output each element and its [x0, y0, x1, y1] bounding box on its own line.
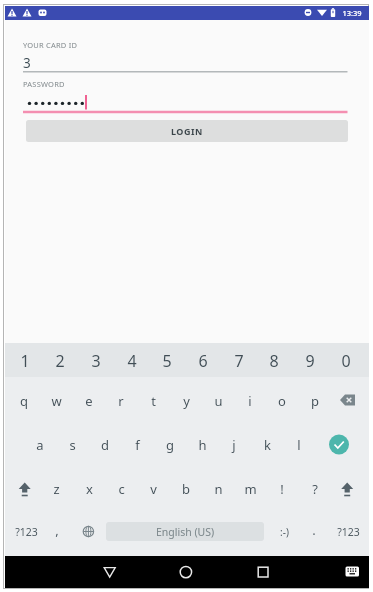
staticText: YOUR CARD ID	[23, 40, 78, 50]
staticText: LOGIN	[171, 125, 203, 137]
staticText: z	[53, 480, 60, 498]
staticText: 9	[305, 350, 315, 372]
staticText: q	[20, 392, 28, 410]
staticText: 3	[23, 54, 31, 72]
staticText: 5	[162, 350, 172, 372]
staticText: e	[85, 392, 93, 410]
staticText: o	[278, 392, 286, 410]
staticText: ?	[312, 480, 318, 498]
staticText: a	[36, 436, 44, 454]
staticText: 3	[91, 350, 101, 372]
staticText: w	[51, 392, 62, 410]
staticText: 13:39	[342, 8, 362, 18]
button[interactable]: LOGIN	[26, 120, 348, 142]
staticText: :-)	[280, 525, 289, 539]
staticText: m	[244, 480, 257, 498]
staticText: b	[182, 480, 190, 498]
staticText: p	[311, 392, 319, 410]
staticText: x	[86, 480, 93, 498]
staticText: ?123	[337, 525, 360, 539]
staticText: j	[232, 436, 236, 454]
staticText: 6	[198, 350, 208, 372]
staticText: i	[248, 392, 252, 410]
staticText: r	[118, 392, 124, 410]
staticText: l	[297, 436, 301, 454]
staticText: 4	[127, 350, 137, 372]
staticText: !	[280, 480, 284, 498]
staticText: u	[214, 392, 223, 410]
staticText: n	[214, 480, 223, 498]
staticText: d	[101, 436, 109, 454]
button[interactable]: English (US)	[106, 522, 264, 541]
staticText: .	[312, 521, 316, 539]
staticText: c	[118, 480, 125, 498]
staticText: s	[69, 436, 76, 454]
staticText: t	[151, 392, 156, 410]
staticText: y	[183, 392, 190, 410]
staticText: English (US)	[156, 525, 215, 539]
staticText: 8	[269, 350, 279, 372]
button[interactable]	[127, 556, 248, 588]
staticText: k	[264, 436, 271, 454]
staticText: f	[135, 436, 140, 454]
staticText: 7	[234, 350, 244, 372]
staticText: 1	[20, 350, 30, 372]
button[interactable]	[5, 556, 127, 588]
staticText: ?123	[15, 525, 38, 539]
staticText: v	[150, 480, 157, 498]
staticText: 2	[55, 350, 65, 372]
staticText: PASSWORD	[23, 79, 65, 89]
button[interactable]	[248, 556, 369, 588]
staticText: ,	[55, 521, 59, 539]
staticText: h	[198, 436, 207, 454]
staticText: 0	[341, 350, 351, 372]
staticText: g	[166, 436, 174, 454]
